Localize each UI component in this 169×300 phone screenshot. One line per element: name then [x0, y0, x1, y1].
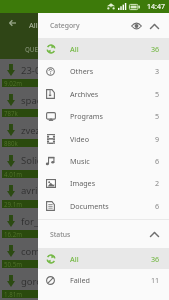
- staticText: 6: [155, 201, 160, 211]
- staticText: Programs: [70, 111, 103, 121]
- staticText: All: [29, 20, 38, 30]
- button[interactable]: All: [38, 38, 169, 60]
- staticText: 36: [151, 254, 160, 264]
- staticText: 16.2m: [4, 230, 23, 238]
- staticText: Documents: [70, 201, 109, 211]
- staticText: 6: [155, 156, 160, 166]
- staticText: 29.1m: [4, 200, 23, 208]
- staticText: Failed: [70, 275, 90, 285]
- button[interactable]: Documents: [38, 195, 169, 217]
- staticText: 5: [155, 89, 160, 99]
- button[interactable]: Collapse section: [146, 18, 162, 34]
- staticText: 2: [155, 178, 160, 188]
- staticText: All: [70, 44, 79, 54]
- staticText: avril-: [21, 184, 44, 197]
- button[interactable]: Video: [38, 128, 169, 150]
- staticText: spac: [21, 94, 42, 107]
- staticText: Status: [50, 230, 71, 239]
- button[interactable]: Others: [38, 60, 169, 82]
- staticText: 9.02m: [4, 79, 23, 87]
- staticText: QUEUE: [25, 45, 46, 53]
- staticText: 14:47: [147, 2, 165, 12]
- staticText: 36: [151, 44, 160, 54]
- staticText: Category: [50, 21, 80, 30]
- staticText: com: [21, 245, 41, 258]
- staticText: zvez: [21, 124, 41, 137]
- staticText: 787k: [4, 109, 18, 117]
- button[interactable]: Music: [38, 150, 169, 172]
- staticText: 11: [151, 275, 160, 285]
- staticText: Music: [70, 156, 90, 166]
- staticText: 9: [155, 134, 160, 144]
- staticText: All: [70, 254, 79, 264]
- button[interactable]: All: [38, 248, 169, 270]
- staticText: Images: [70, 178, 96, 188]
- button[interactable]: Archives: [38, 83, 169, 105]
- button[interactable]: Collapse section: [146, 226, 162, 242]
- button[interactable]: Programs: [38, 105, 169, 127]
- button[interactable]: Failed: [38, 269, 169, 291]
- staticText: 880k: [4, 139, 18, 147]
- button[interactable]: Toggle visibility: [128, 18, 144, 34]
- staticText: Video: [70, 134, 89, 144]
- staticText: 23-0: [21, 64, 41, 77]
- staticText: 3: [155, 66, 160, 76]
- staticText: 50.5m: [4, 260, 23, 268]
- button[interactable]: Images: [38, 172, 169, 194]
- staticText: Solid: [21, 154, 43, 167]
- staticText: goro: [21, 275, 43, 288]
- staticText: for_a: [21, 215, 44, 228]
- staticText: 1.81m: [4, 290, 23, 298]
- staticText: 5: [155, 111, 160, 121]
- staticText: 4.01m: [4, 170, 23, 178]
- staticText: Archives: [70, 89, 99, 99]
- button[interactable]: Back: [4, 14, 21, 31]
- staticText: Others: [70, 66, 94, 76]
